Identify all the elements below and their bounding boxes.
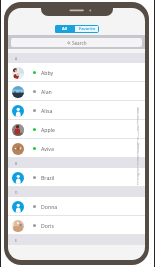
- button[interactable]: Donna: [8, 197, 145, 216]
- button[interactable]: Alan: [8, 82, 145, 101]
- staticText: X: [137, 176, 139, 179]
- staticText: T: [137, 164, 139, 167]
- staticText: D: [137, 116, 139, 119]
- staticText: Search: [72, 40, 87, 46]
- staticText: R: [137, 158, 139, 161]
- staticText: H: [137, 128, 139, 131]
- staticText: Abby: [41, 69, 54, 76]
- staticText: G: [137, 125, 139, 128]
- button[interactable]: Aviva: [8, 139, 145, 158]
- staticText: P: [137, 152, 139, 155]
- staticText: B: [137, 110, 139, 113]
- staticText: A: [137, 107, 139, 110]
- staticText: Brazil: [41, 174, 55, 181]
- staticText: I: [138, 131, 139, 134]
- button[interactable]: Alphabet index: [134, 107, 142, 185]
- staticText: Doris: [41, 222, 54, 229]
- staticText: A: [15, 56, 18, 61]
- staticText: L: [137, 140, 139, 143]
- staticText: Z: [137, 182, 139, 185]
- staticText: Aviva: [41, 145, 54, 152]
- staticText: S: [137, 161, 139, 164]
- staticText: B: [15, 161, 18, 166]
- staticText: Donna: [41, 203, 58, 210]
- button[interactable]: Alisa: [8, 101, 145, 120]
- staticText: F: [137, 122, 139, 125]
- staticText: K: [137, 137, 139, 140]
- staticText: Y: [137, 179, 139, 182]
- staticText: Alan: [41, 88, 52, 95]
- staticText: O: [137, 149, 140, 152]
- button[interactable]: Brazil: [8, 168, 145, 187]
- button[interactable]: Favorite: [75, 25, 99, 33]
- staticText: E: [15, 238, 17, 243]
- staticText: D: [15, 190, 18, 195]
- button[interactable]: Abby: [8, 63, 145, 82]
- staticText: Alisa: [41, 107, 53, 114]
- button[interactable]: Apple: [8, 120, 145, 139]
- staticText: V: [137, 170, 139, 173]
- staticText: W: [137, 173, 140, 176]
- button[interactable]: Search: [11, 38, 142, 47]
- button[interactable]: All: [55, 25, 75, 33]
- staticText: Q: [137, 155, 140, 158]
- staticText: E: [137, 119, 139, 122]
- staticText: C: [137, 113, 139, 116]
- button[interactable]: Doris: [8, 216, 145, 235]
- staticText: U: [137, 167, 139, 170]
- staticText: Favorite: [79, 26, 96, 32]
- staticText: N: [137, 146, 139, 149]
- staticText: All: [62, 26, 68, 32]
- staticText: M: [137, 143, 140, 146]
- staticText: Apple: [41, 126, 55, 133]
